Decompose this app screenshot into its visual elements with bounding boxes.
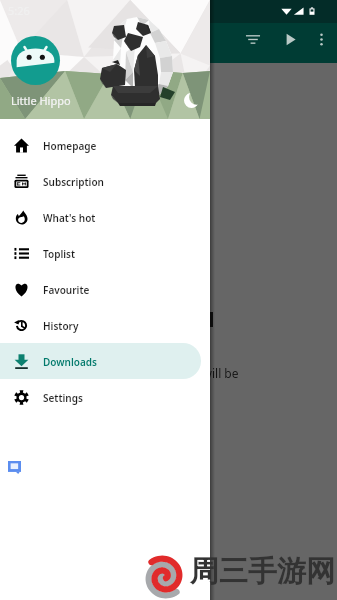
button[interactable]: History (0, 307, 201, 343)
button[interactable]: Assistant (6, 459, 22, 475)
button[interactable]: More options (304, 22, 337, 56)
staticText: Your downloads will be (109, 365, 239, 381)
staticText: 周三手游网 (190, 553, 335, 590)
staticText: What's hot (43, 211, 96, 225)
button[interactable]: Night mode (179, 88, 203, 112)
staticText: Subscription (43, 175, 104, 189)
button[interactable]: Subscription (0, 163, 201, 199)
button[interactable]: What's hot (0, 199, 201, 235)
button[interactable]: Play (273, 22, 307, 56)
button[interactable]: Settings (0, 379, 201, 415)
button[interactable]: Downloads (0, 343, 201, 379)
button[interactable]: Homepage (0, 127, 201, 163)
staticText: Little Hippo (11, 93, 71, 108)
staticText: Favourite (43, 283, 90, 297)
staticText: Downloads (43, 355, 98, 369)
button[interactable]: Toplist (0, 235, 201, 271)
staticText: Toplist (43, 247, 76, 261)
button[interactable]: Favourite (0, 271, 201, 307)
button[interactable]: Filter (236, 22, 270, 56)
staticText: History (43, 319, 79, 333)
staticText: Homepage (43, 139, 97, 153)
staticText: Settings (43, 391, 83, 405)
